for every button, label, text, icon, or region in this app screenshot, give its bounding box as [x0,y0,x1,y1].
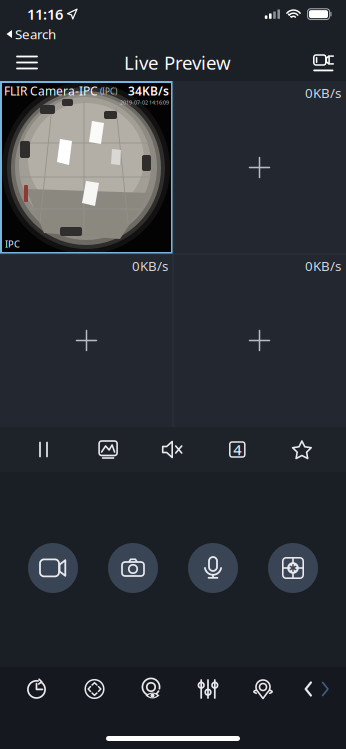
button[interactable]: Grid layout [205,427,270,472]
staticText: 0KB/s [305,257,341,275]
button[interactable]: Snapshot [76,427,140,472]
button[interactable]: Add camera [173,254,346,427]
staticText: 0KB/s [305,84,341,102]
button[interactable]: Presets [235,669,290,709]
staticText: IPC [5,238,20,250]
button[interactable]: Snapshot [108,543,158,593]
button[interactable]: Microphone [188,543,238,593]
button[interactable]: FLIR Camera-IPC live view [0,81,173,254]
button[interactable]: Playback [7,669,65,709]
button[interactable]: Favorite [270,427,334,472]
button[interactable]: Add camera [0,254,173,427]
staticText: 0KB/s [132,257,168,275]
staticText: (IPC) [100,86,117,97]
staticText: 4 [233,440,241,459]
button[interactable]: Adjustments [180,669,235,709]
button[interactable]: Pause [11,427,76,472]
button[interactable]: Mute [140,427,205,472]
staticText: Search [15,25,56,43]
staticText: 2019-07-02 14:16:09 [120,99,169,106]
staticText: 34KB/s [128,83,169,99]
button[interactable]: PTZ control [65,669,123,709]
button[interactable]: Add camera [173,81,346,254]
button[interactable]: Menu [0,44,54,81]
button[interactable]: Record video [28,543,78,593]
button[interactable]: Smart detection [123,669,180,709]
staticText: FLIR Camera-IPC [4,83,98,99]
button[interactable]: More tools [290,669,342,709]
button[interactable]: PTZ control [268,543,318,593]
staticText: 11:16 [27,4,63,24]
staticText: Live Preview [124,50,231,75]
button[interactable]: Camera list [301,44,346,81]
